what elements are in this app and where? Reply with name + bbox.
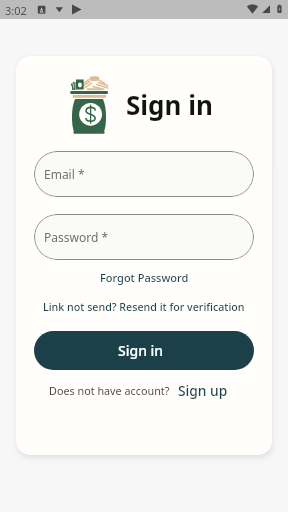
staticText: Sign in: [126, 87, 213, 122]
button[interactable]: Link not send? Resend it for verificatio…: [35, 297, 253, 318]
staticText: Email *: [44, 166, 85, 182]
staticText: 3:02: [5, 3, 27, 18]
button[interactable]: Password *: [34, 214, 254, 260]
button[interactable]: Forgot Password: [92, 267, 197, 288]
button[interactable]: Sign in: [34, 331, 254, 370]
staticText: Password *: [44, 229, 109, 245]
staticText: Does not have account?: [49, 383, 170, 398]
staticText: Sign in: [118, 341, 164, 360]
button[interactable]: Sign up: [178, 381, 228, 400]
button[interactable]: Email *: [34, 151, 254, 197]
